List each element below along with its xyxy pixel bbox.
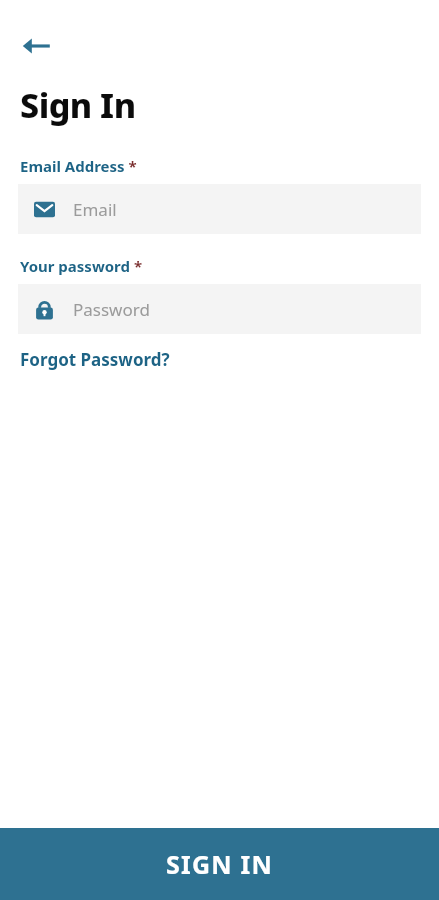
button[interactable]: Back [12,22,60,70]
staticText: Email [73,198,117,221]
staticText: Email Address * [20,156,137,176]
button[interactable]: Forgot Password? [20,346,170,373]
staticText: Your password * [20,256,143,276]
staticText: Password [73,298,150,321]
button[interactable]: Password field [18,284,421,334]
staticText: SIGN IN [166,847,273,881]
button[interactable]: SIGN IN [0,828,439,900]
staticText: Sign In [20,82,136,128]
button[interactable]: Email address field [18,184,421,234]
staticText: Forgot Password? [20,348,170,371]
